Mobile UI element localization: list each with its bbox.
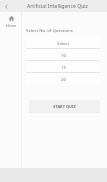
button[interactable]: Back [1,1,12,12]
button[interactable]: 10 [26,49,100,60]
staticText: Select No. of Questions [26,27,73,33]
staticText: 10 [61,52,66,58]
button[interactable]: Select [26,37,100,48]
staticText: 20 [61,76,66,82]
button[interactable]: START QUIZ [29,100,100,112]
button[interactable]: Home [0,15,22,28]
button[interactable]: 20 [26,73,100,84]
staticText: START QUIZ [53,104,76,109]
staticText: Select [57,40,69,46]
staticText: Home [6,23,16,28]
button[interactable]: 15 [26,61,100,72]
staticText: 15 [61,64,66,70]
staticText: Artificial Intelligence Quiz [27,3,88,10]
